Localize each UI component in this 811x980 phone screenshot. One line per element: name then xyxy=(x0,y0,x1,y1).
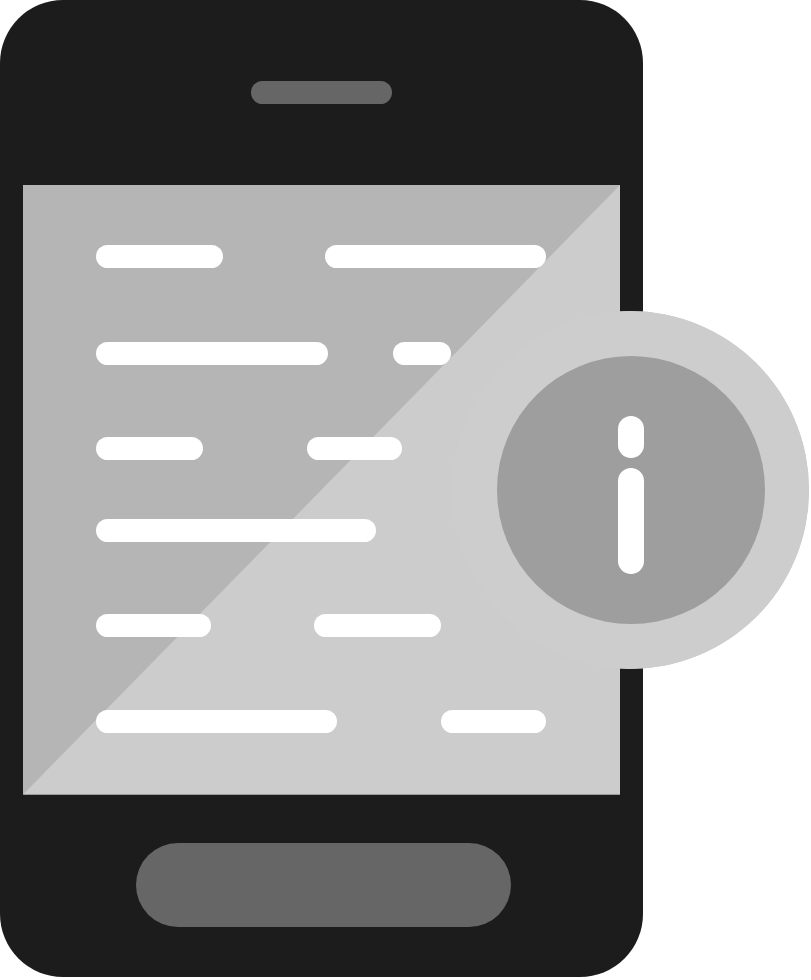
button[interactable]: Message details xyxy=(23,185,620,795)
button[interactable]: Information xyxy=(451,311,809,669)
button[interactable]: Home xyxy=(136,843,511,927)
